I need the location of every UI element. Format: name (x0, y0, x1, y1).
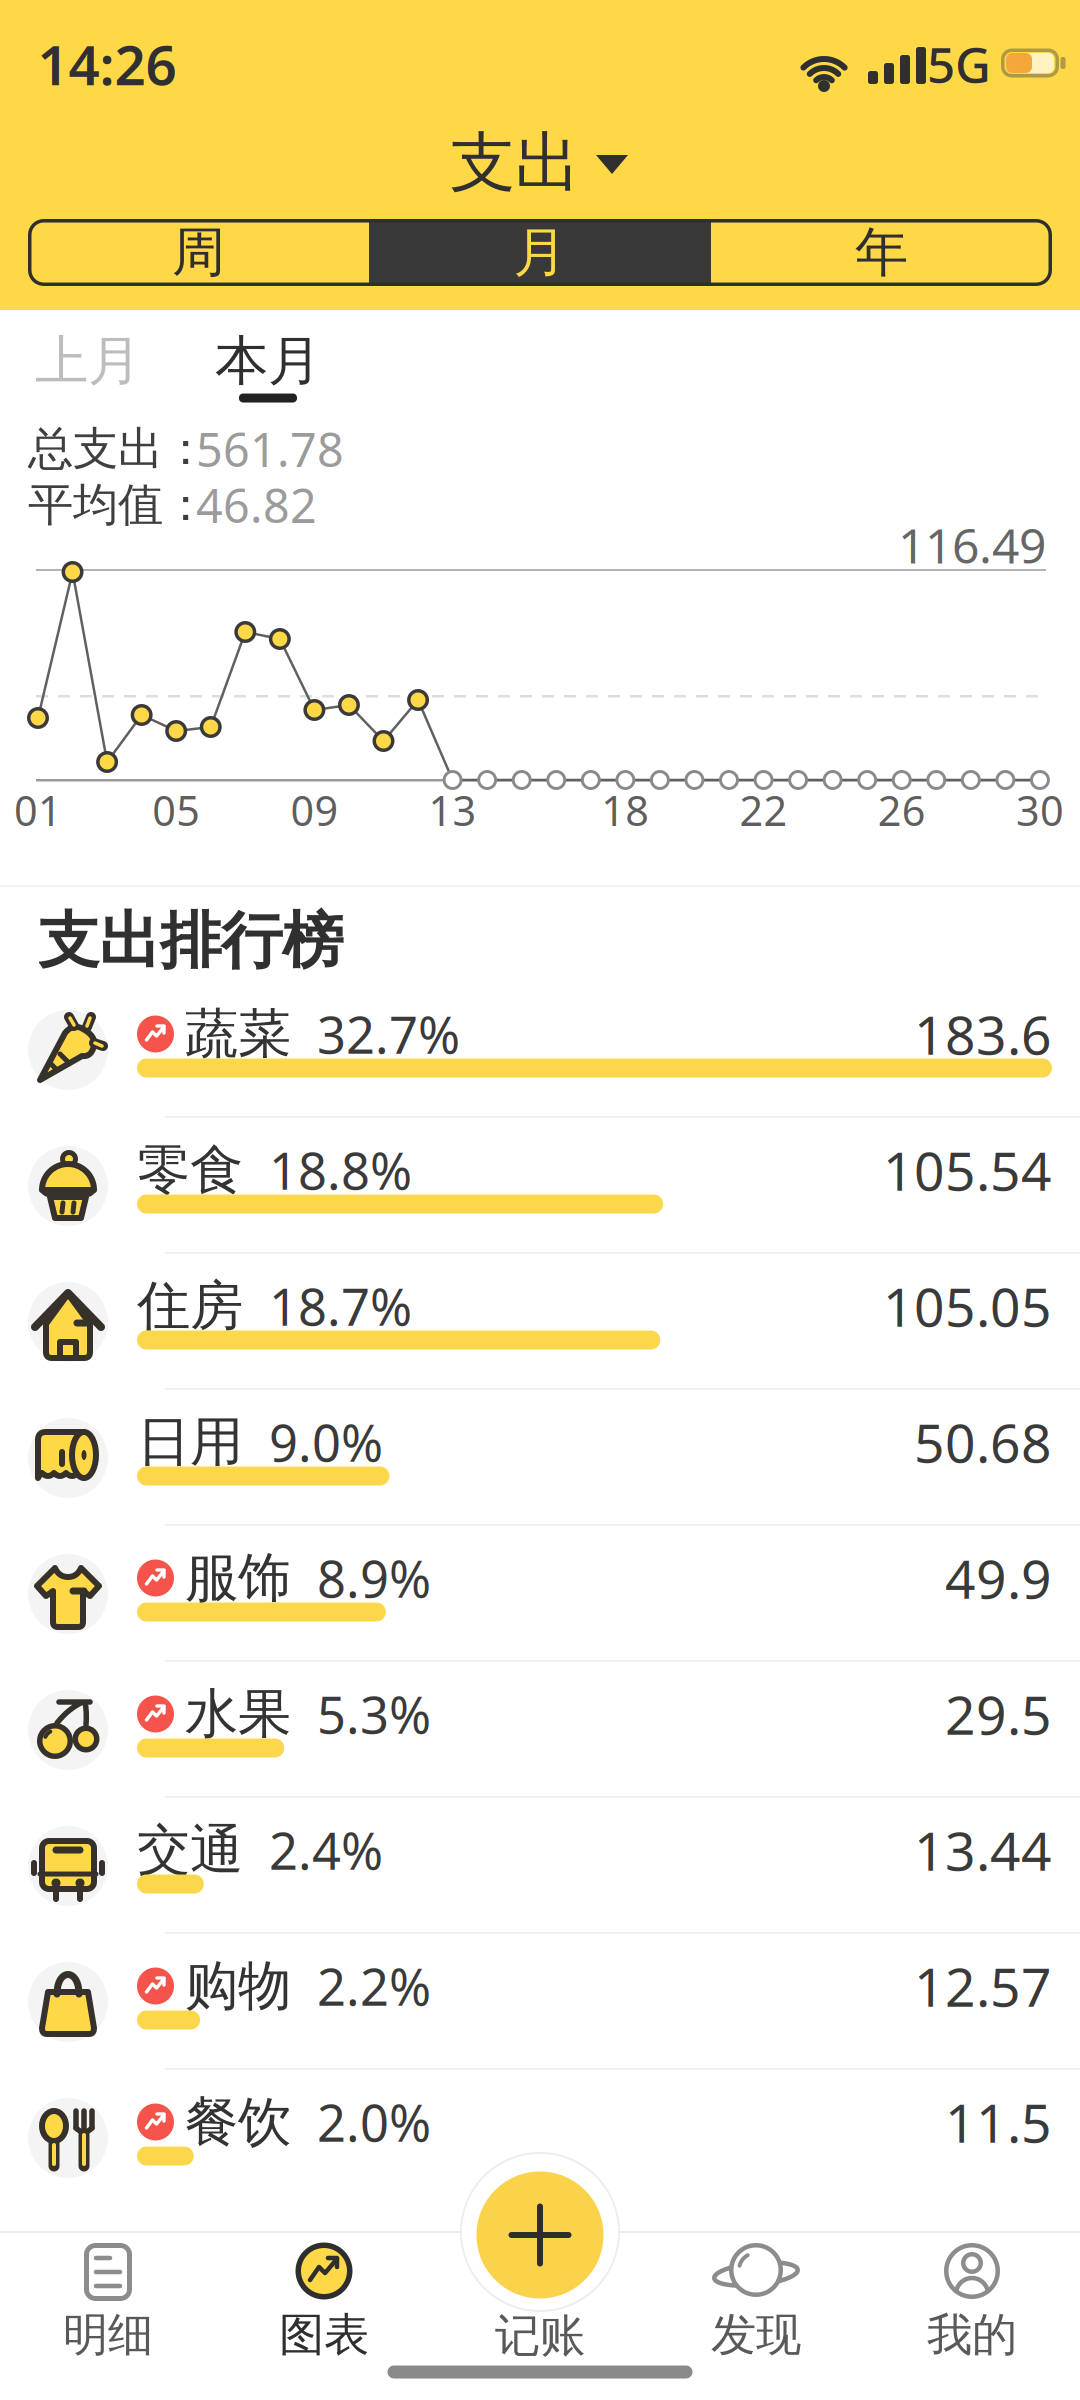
button[interactable]: 购物 (0, 1934, 1080, 2070)
staticText: 12.57 (914, 1951, 1052, 2021)
staticText: 183.6 (914, 999, 1052, 1069)
staticText: 购物 (185, 1953, 291, 2019)
staticText: 平均值： (28, 477, 208, 533)
button[interactable]: 水果 (0, 1662, 1080, 1798)
button[interactable]: 明细 (0, 2232, 216, 2368)
button[interactable]: 本月 (188, 321, 348, 401)
staticText: 09 (290, 783, 338, 837)
staticText: 30 (1016, 783, 1064, 837)
staticText: 总支出： (28, 421, 208, 477)
staticText: 13.44 (914, 1815, 1052, 1885)
staticText: 01 (14, 783, 62, 837)
button[interactable]: 交通 (0, 1798, 1080, 1934)
staticText: 50.68 (914, 1407, 1052, 1477)
staticText: 明细 (63, 2307, 153, 2363)
button[interactable]: 我的 (864, 2232, 1080, 2368)
staticText: 住房 (137, 1273, 243, 1339)
staticText: 46.82 (196, 474, 317, 536)
staticText: 13 (429, 783, 477, 837)
staticText: 月 (513, 220, 566, 285)
button[interactable]: 住房 (0, 1254, 1080, 1390)
staticText: 2.4% (269, 1816, 383, 1884)
staticText: 116.49 (898, 513, 1046, 577)
staticText: 18 (601, 783, 649, 837)
button[interactable]: 蔬菜 (0, 982, 1080, 1118)
staticText: 9.0% (269, 1408, 383, 1476)
staticText: 49.9 (945, 1543, 1052, 1613)
staticText: 5G (927, 31, 991, 97)
staticText: 支出排行榜 (38, 903, 343, 979)
staticText: 我的 (927, 2307, 1017, 2363)
staticText: 支出 (450, 123, 580, 203)
button[interactable]: 餐饮 (0, 2070, 1080, 2206)
staticText: 105.54 (883, 1135, 1052, 1205)
staticText: 11.5 (945, 2087, 1052, 2157)
button[interactable]: 年 (711, 220, 1051, 284)
staticText: 蔬菜 (185, 1001, 291, 1067)
staticText: 日用 (137, 1409, 243, 1475)
button[interactable]: 记账 (476, 2171, 603, 2298)
staticText: 32.7% (317, 1000, 460, 1068)
staticText: 2.0% (317, 2088, 431, 2156)
staticText: 本月 (215, 328, 321, 394)
staticText: 交通 (137, 1817, 243, 1883)
staticText: 图表 (279, 2307, 369, 2363)
button[interactable]: 零食 (0, 1118, 1080, 1254)
staticText: 2.2% (317, 1952, 431, 2020)
button[interactable]: 图表 (216, 2232, 432, 2368)
staticText: 餐饮 (185, 2089, 291, 2155)
staticText: 18.8% (269, 1136, 412, 1204)
button[interactable]: 周 (28, 220, 368, 284)
staticText: 29.5 (945, 1679, 1052, 1749)
button[interactable]: 服饰 (0, 1526, 1080, 1662)
staticText: 561.78 (196, 418, 344, 480)
staticText: 18.7% (269, 1272, 412, 1340)
staticText: 零食 (137, 1137, 243, 1203)
staticText: 服饰 (185, 1545, 291, 1611)
staticText: 上月 (35, 328, 141, 394)
button[interactable]: 支出 (450, 123, 630, 203)
staticText: 14:26 (37, 28, 176, 100)
button[interactable]: 发现 (648, 2232, 864, 2368)
staticText: 水果 (185, 1681, 291, 1747)
button[interactable]: 日用 (0, 1390, 1080, 1526)
staticText: 年 (855, 220, 908, 285)
staticText: 发现 (711, 2307, 801, 2363)
staticText: 周 (172, 220, 225, 285)
staticText: 记账 (495, 2308, 585, 2364)
button[interactable]: 月 (370, 220, 710, 284)
staticText: 5.3% (317, 1680, 431, 1748)
staticText: 22 (739, 783, 787, 837)
staticText: 105.05 (883, 1271, 1052, 1341)
staticText: 8.9% (317, 1544, 431, 1612)
staticText: 05 (152, 783, 200, 837)
button[interactable]: 上月 (8, 321, 168, 401)
staticText: 26 (878, 783, 926, 837)
